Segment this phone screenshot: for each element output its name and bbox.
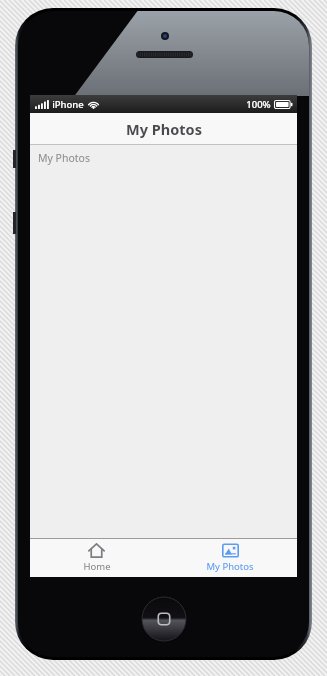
staticText: 100%: [246, 98, 271, 111]
staticText: My Photos: [38, 151, 90, 165]
other: Home button: [142, 597, 186, 641]
staticText: My Photos: [206, 560, 254, 573]
button[interactable]: Home: [30, 539, 163, 577]
staticText: Home: [83, 560, 111, 573]
staticText: My Photos: [126, 119, 202, 139]
staticText: iPhone: [52, 98, 84, 111]
button[interactable]: My Photos: [163, 539, 297, 577]
